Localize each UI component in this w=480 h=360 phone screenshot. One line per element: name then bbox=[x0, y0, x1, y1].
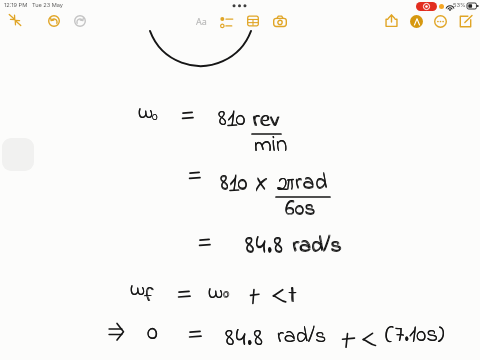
staticText: rad bbox=[295, 168, 328, 200]
staticText: 84.8 bbox=[225, 321, 264, 357]
staticText: (7.10s) bbox=[385, 319, 445, 353]
staticText: 84.8 bbox=[225, 321, 264, 357]
staticText: f bbox=[145, 283, 154, 311]
staticText: X bbox=[255, 169, 268, 201]
staticText: w bbox=[208, 276, 224, 310]
button[interactable]: More options bbox=[434, 15, 447, 28]
staticText: 84.8 bbox=[245, 228, 284, 264]
button[interactable]: Redo bbox=[74, 15, 86, 27]
staticText: rad/s bbox=[292, 231, 342, 263]
staticText: 810 bbox=[220, 167, 249, 201]
staticText: 0 bbox=[223, 285, 229, 304]
staticText: w bbox=[138, 96, 154, 130]
staticText: w bbox=[138, 96, 154, 130]
staticText: rad/s bbox=[277, 321, 327, 353]
staticText: 810 bbox=[220, 168, 249, 202]
staticText: min bbox=[254, 129, 288, 163]
staticText: f bbox=[144, 283, 153, 311]
button[interactable]: Text format bbox=[193, 14, 210, 28]
staticText: rad/s bbox=[292, 230, 342, 262]
button[interactable]: Insert table bbox=[247, 15, 259, 27]
staticText: w bbox=[130, 273, 146, 307]
staticText: rad/s bbox=[277, 321, 327, 353]
button[interactable]: New note bbox=[459, 15, 472, 28]
staticText: min bbox=[254, 129, 288, 163]
staticText: 84.8 bbox=[245, 228, 284, 264]
staticText: 0 bbox=[223, 284, 229, 303]
staticText: 0 bbox=[224, 284, 230, 303]
staticText: X bbox=[255, 168, 268, 200]
staticText: 60s bbox=[285, 194, 316, 226]
staticText: 0 bbox=[147, 315, 158, 351]
button[interactable]: Camera bbox=[273, 15, 287, 29]
staticText: 0 bbox=[147, 315, 158, 351]
staticText: 0 bbox=[152, 107, 158, 126]
staticText: X bbox=[255, 168, 268, 200]
staticText: 2 bbox=[277, 169, 288, 201]
staticText: w bbox=[130, 273, 146, 307]
staticText: rev bbox=[253, 104, 280, 138]
staticText: t bbox=[289, 280, 297, 314]
staticText: t bbox=[289, 280, 297, 314]
staticText: 2 bbox=[277, 169, 288, 201]
button[interactable]: Undo bbox=[48, 15, 60, 27]
staticText: w bbox=[208, 276, 224, 310]
staticText: rad/s bbox=[277, 321, 327, 353]
button[interactable]: Share bbox=[385, 14, 398, 27]
staticText: rad bbox=[295, 167, 328, 199]
staticText: rev bbox=[253, 104, 280, 138]
staticText: Aa bbox=[196, 15, 207, 27]
staticText: rev bbox=[252, 104, 279, 138]
staticText: (7.10s) bbox=[385, 319, 445, 353]
staticText: min bbox=[254, 129, 288, 163]
staticText: 0 bbox=[147, 315, 158, 351]
staticText: 810 bbox=[220, 167, 249, 201]
staticText: w bbox=[208, 276, 224, 310]
staticText: f bbox=[144, 283, 153, 311]
staticText: 810 bbox=[218, 103, 247, 137]
staticText: 12:19 PM Tue 23 May bbox=[4, 2, 63, 9]
staticText: 810 bbox=[218, 103, 247, 137]
staticText: 84.8 bbox=[245, 229, 284, 265]
button[interactable]: Checklist bbox=[220, 16, 233, 29]
staticText: 53% bbox=[453, 1, 466, 8]
button[interactable]: Collapse bbox=[9, 14, 21, 26]
staticText: 810 bbox=[218, 103, 247, 137]
staticText: t bbox=[288, 280, 296, 314]
staticText: 84.8 bbox=[225, 321, 264, 357]
button[interactable]: Account bbox=[410, 15, 423, 28]
staticText: 60s bbox=[285, 193, 316, 225]
staticText: rad/s bbox=[293, 230, 343, 262]
staticText: w bbox=[138, 96, 154, 130]
staticText: 0 bbox=[152, 107, 158, 126]
staticText: 0 bbox=[152, 107, 158, 126]
staticText: rad bbox=[295, 167, 328, 199]
staticText: 2 bbox=[277, 169, 288, 201]
staticText: (7.10s) bbox=[385, 319, 445, 353]
staticText: w bbox=[130, 273, 146, 307]
staticText: 60s bbox=[285, 193, 316, 225]
